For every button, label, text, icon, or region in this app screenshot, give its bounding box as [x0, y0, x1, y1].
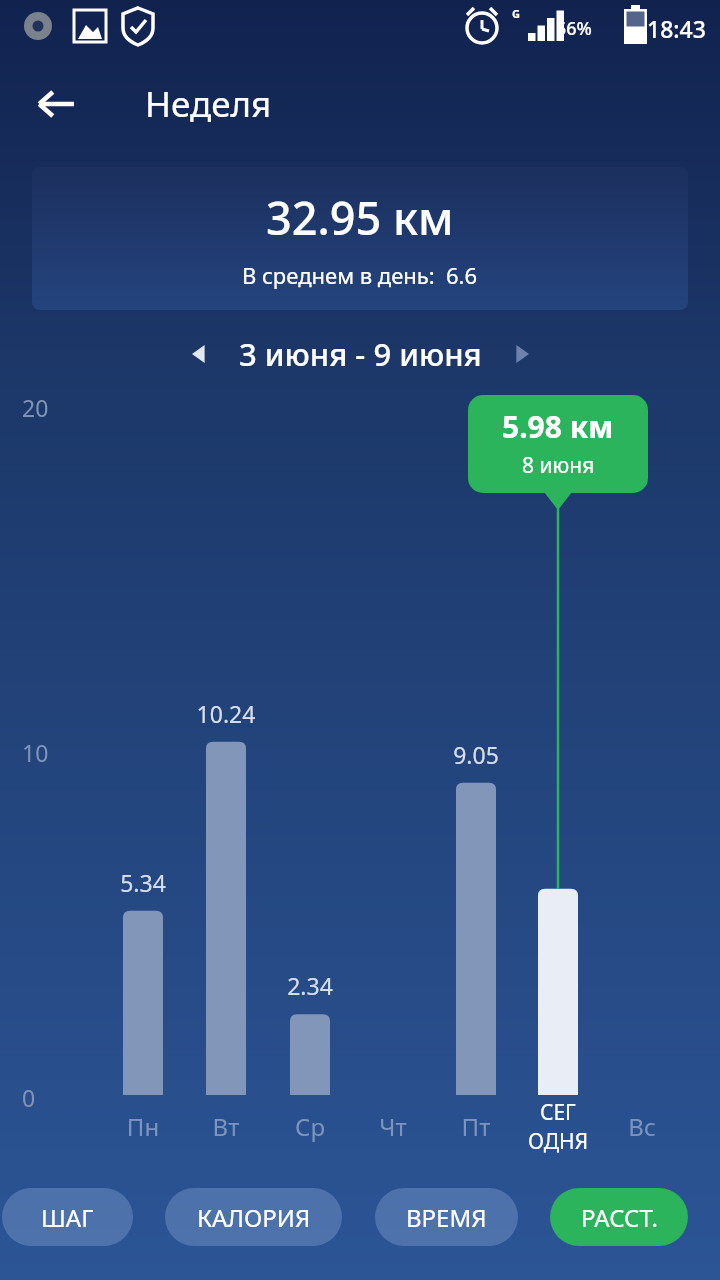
- staticText: РАССТ.: [581, 1201, 658, 1234]
- button[interactable]: КАЛОРИЯ: [165, 1188, 342, 1246]
- staticText: Неделя: [145, 80, 272, 128]
- staticText: СЕГ: [540, 1098, 576, 1127]
- staticText: Пн: [73, 1110, 213, 1143]
- staticText: Пт: [406, 1110, 546, 1143]
- staticText: 56%: [556, 16, 592, 41]
- staticText: Ср: [240, 1110, 380, 1143]
- button[interactable]: 32.95 км: [32, 167, 688, 310]
- staticText: Вт: [156, 1110, 296, 1143]
- staticText: 5.34: [73, 867, 213, 898]
- staticText: 9.05: [406, 739, 546, 770]
- staticText: 8 июня: [522, 451, 595, 480]
- staticText: G: [512, 6, 520, 21]
- staticText: 18:43: [647, 13, 706, 44]
- button[interactable]: ШАГ: [2, 1188, 133, 1246]
- staticText: Чт: [323, 1110, 463, 1143]
- staticText: 5.98 км: [502, 406, 614, 447]
- staticText: 10: [22, 737, 49, 768]
- button[interactable]: ВРЕМЯ: [375, 1188, 518, 1246]
- staticText: 2.34: [240, 970, 380, 1001]
- button[interactable]: Back: [24, 72, 88, 136]
- staticText: Вс: [572, 1110, 712, 1143]
- staticText: 32.95 км: [266, 187, 454, 248]
- staticText: 20: [22, 392, 49, 423]
- staticText: 10.24: [156, 698, 296, 729]
- button[interactable]: Previous week: [175, 330, 223, 378]
- staticText: В среднем в день: 6.6: [242, 260, 478, 290]
- staticText: ВРЕМЯ: [406, 1201, 487, 1234]
- staticText: ОДНЯ: [528, 1127, 589, 1156]
- button[interactable]: РАССТ.: [550, 1188, 688, 1246]
- staticText: ШАГ: [41, 1201, 94, 1234]
- staticText: 3 июня - 9 июня: [239, 333, 482, 375]
- staticText: КАЛОРИЯ: [197, 1201, 311, 1234]
- button[interactable]: Next week: [498, 330, 546, 378]
- staticText: 0: [22, 1082, 36, 1113]
